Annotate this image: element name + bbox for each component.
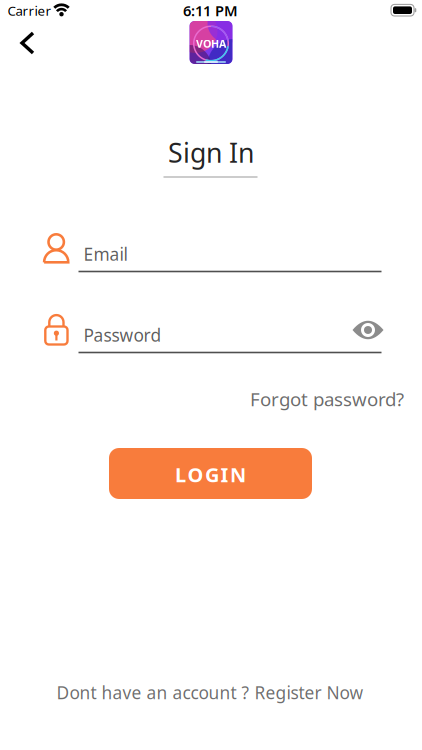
button[interactable]: Forgot password? — [184, 387, 404, 411]
staticText: Email — [83, 242, 127, 265]
staticText: LOGIN — [175, 461, 246, 488]
staticText: Password — [83, 323, 161, 346]
button[interactable]: Dont have an account ? Register Now — [56, 681, 363, 704]
button[interactable]: Password — [40, 310, 384, 356]
button[interactable]: LOGIN — [109, 448, 312, 499]
button[interactable] — [20, 31, 34, 54]
button[interactable]: Email — [40, 229, 384, 273]
staticText: Forgot password? — [250, 387, 404, 411]
staticText: Sign In — [168, 135, 254, 170]
staticText: Dont have an account ? Register Now — [56, 681, 363, 704]
staticText: VOHA — [196, 36, 226, 51]
staticText: 6:11 PM — [183, 1, 238, 20]
staticText: Carrier — [7, 2, 51, 19]
button[interactable] — [352, 320, 383, 340]
